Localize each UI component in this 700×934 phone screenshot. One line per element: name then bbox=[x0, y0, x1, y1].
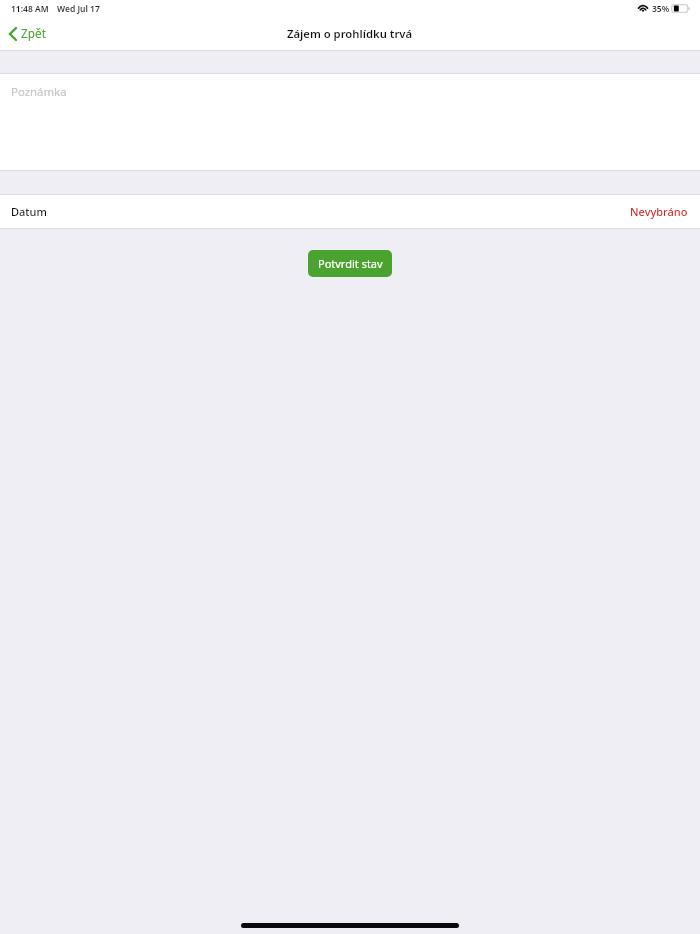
other: Battery 35 percent bbox=[671, 4, 690, 13]
staticText: Poznámka bbox=[11, 84, 67, 100]
staticText: Potvrdit stav bbox=[318, 256, 383, 271]
other: Wi-Fi bbox=[637, 5, 647, 13]
staticText: Datum bbox=[11, 204, 47, 219]
staticText: 11:48 AM bbox=[11, 3, 49, 15]
button[interactable]: Zpět bbox=[8, 25, 46, 41]
button[interactable]: Datum bbox=[0, 195, 700, 228]
staticText: 35% bbox=[652, 3, 670, 15]
staticText: Nevybráno bbox=[630, 204, 688, 219]
button[interactable]: Potvrdit stav bbox=[308, 250, 392, 277]
staticText: Zpět bbox=[21, 25, 46, 41]
staticText: Wed Jul 17 bbox=[57, 3, 100, 15]
staticText: Zájem o prohlídku trvá bbox=[287, 26, 413, 41]
